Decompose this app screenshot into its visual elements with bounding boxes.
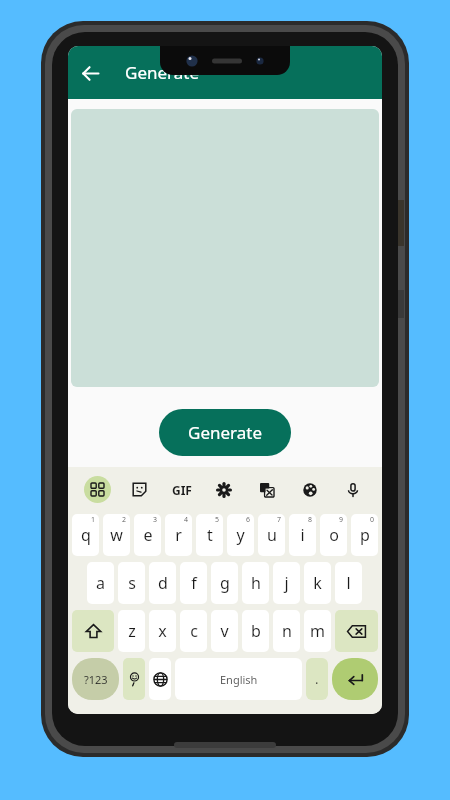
button[interactable]: x: [149, 610, 176, 652]
button[interactable]: e: [134, 514, 161, 556]
button[interactable]: p: [351, 514, 378, 556]
button[interactable]: n: [273, 610, 300, 652]
button[interactable]: Generate: [159, 409, 291, 456]
staticText: ?123: [84, 672, 108, 687]
button[interactable]: Stickers: [118, 467, 160, 511]
button[interactable]: u: [258, 514, 285, 556]
button[interactable]: j: [273, 562, 300, 604]
staticText: 9: [339, 515, 344, 525]
staticText: c: [190, 620, 198, 642]
button[interactable]: Theme: [288, 467, 331, 511]
button[interactable]: q: [72, 514, 99, 556]
staticText: l: [346, 572, 351, 594]
staticText: o: [329, 524, 339, 546]
button[interactable]: Back: [76, 59, 104, 87]
button[interactable]: g: [211, 562, 238, 604]
staticText: w: [110, 524, 123, 546]
staticText: p: [360, 524, 370, 546]
button[interactable]: Language: [149, 658, 171, 700]
button[interactable]: i: [289, 514, 316, 556]
staticText: 0: [370, 515, 375, 525]
staticText: m: [310, 620, 325, 642]
staticText: x: [158, 620, 167, 642]
staticText: u: [267, 524, 277, 546]
button[interactable]: y: [227, 514, 254, 556]
button[interactable]: o: [320, 514, 347, 556]
button[interactable]: s: [118, 562, 145, 604]
button[interactable]: w: [103, 514, 130, 556]
button[interactable]: Apps: [76, 467, 118, 511]
staticText: y: [236, 524, 245, 546]
button[interactable]: t: [196, 514, 223, 556]
staticText: e: [143, 524, 153, 546]
button[interactable]: r: [165, 514, 192, 556]
button[interactable]: ?123: [72, 658, 119, 700]
staticText: GIF: [172, 482, 192, 498]
staticText: n: [282, 620, 292, 642]
staticText: z: [128, 620, 136, 642]
staticText: d: [158, 572, 168, 594]
staticText: 5: [215, 515, 220, 525]
button[interactable]: Emoji: [123, 658, 145, 700]
staticText: s: [128, 572, 136, 594]
staticText: 6: [246, 515, 251, 525]
staticText: a: [96, 572, 105, 594]
button[interactable]: m: [304, 610, 331, 652]
staticText: v: [220, 620, 229, 642]
button[interactable]: Backspace: [335, 610, 378, 652]
staticText: i: [300, 524, 305, 546]
button[interactable]: Shift: [72, 610, 114, 652]
staticText: .: [315, 670, 319, 688]
button[interactable]: k: [304, 562, 331, 604]
staticText: t: [207, 524, 213, 546]
button[interactable]: Enter: [332, 658, 378, 700]
button[interactable]: Settings: [202, 467, 245, 511]
button[interactable]: Voice input: [331, 467, 374, 511]
button[interactable]: a: [87, 562, 114, 604]
staticText: Generate: [125, 61, 200, 84]
button[interactable]: b: [242, 610, 269, 652]
button[interactable]: v: [211, 610, 238, 652]
button[interactable]: English: [175, 658, 302, 700]
staticText: j: [284, 572, 289, 594]
button[interactable]: GIF: [160, 467, 202, 511]
button[interactable]: z: [118, 610, 145, 652]
button[interactable]: h: [242, 562, 269, 604]
staticText: q: [81, 524, 91, 546]
staticText: English: [220, 672, 258, 687]
staticText: f: [191, 572, 197, 594]
button[interactable]: Translate: [245, 467, 288, 511]
button[interactable]: d: [149, 562, 176, 604]
button[interactable]: f: [180, 562, 207, 604]
staticText: 3: [153, 515, 158, 525]
staticText: h: [251, 572, 261, 594]
button[interactable]: .: [306, 658, 328, 700]
staticText: g: [220, 572, 230, 594]
staticText: b: [251, 620, 261, 642]
staticText: 7: [277, 515, 282, 525]
button[interactable]: c: [180, 610, 207, 652]
staticText: 8: [308, 515, 313, 525]
staticText: r: [175, 524, 182, 546]
staticText: 2: [122, 515, 127, 525]
staticText: 1: [91, 515, 96, 525]
staticText: Generate: [188, 421, 263, 444]
staticText: 4: [184, 515, 189, 525]
button[interactable]: l: [335, 562, 362, 604]
staticText: k: [313, 572, 322, 594]
